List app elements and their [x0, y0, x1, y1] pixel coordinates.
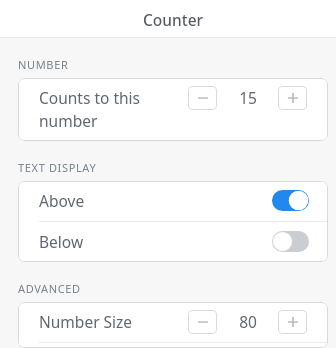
staticText: NUMBER — [18, 57, 69, 72]
button[interactable]: Above — [18, 181, 328, 221]
staticText: 15 — [239, 87, 257, 108]
button[interactable]: Decrease — [188, 86, 217, 110]
button[interactable]: Increase — [278, 86, 307, 110]
staticText: Counts to this number — [39, 87, 159, 132]
staticText: 80 — [239, 311, 257, 332]
staticText: ADVANCED — [18, 281, 81, 296]
button[interactable]: Decrease — [188, 310, 217, 334]
staticText: TEXT DISPLAY — [18, 160, 97, 175]
button[interactable]: Counter — [0, 0, 336, 38]
staticText: Below — [39, 231, 84, 252]
staticText: Number Size — [39, 311, 133, 332]
staticText: Above — [39, 190, 85, 211]
button[interactable]: Below — [18, 222, 328, 262]
staticText: Counter — [143, 9, 204, 30]
button[interactable]: Increase — [278, 310, 307, 334]
